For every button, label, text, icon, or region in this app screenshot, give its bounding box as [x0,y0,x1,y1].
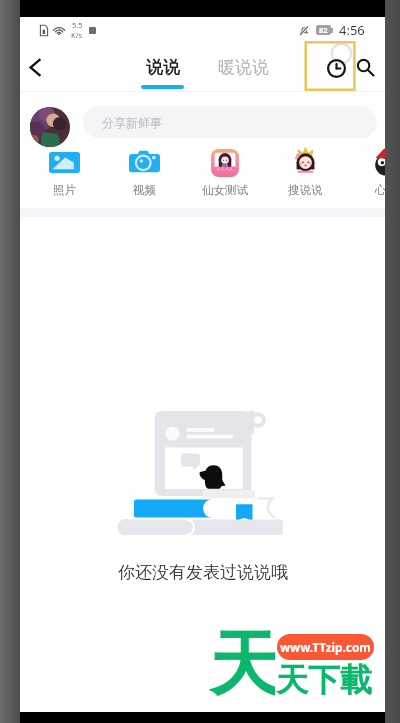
staticText: 照片 [53,183,76,197]
button[interactable]: 分享新鲜事 [83,106,377,138]
button[interactable]: Profile [30,107,70,147]
staticText: 搜说说 [288,183,323,197]
staticText: 仙女测试 [202,183,248,197]
staticText: 5.5 [72,20,83,30]
staticText: 天 [209,621,275,705]
staticText: 82 [319,25,328,35]
staticText: K/s [71,30,83,40]
button[interactable]: Recent visitors [318,50,354,86]
staticText: 心情 [375,183,398,197]
button[interactable]: 视频 [105,148,183,195]
staticText: www.TTzip.com [280,639,371,655]
button[interactable]: 暖说说 [216,43,270,91]
button[interactable]: 仙女测试 [186,148,264,195]
staticText: 暖说说 [218,57,269,78]
staticText: 4:56 [339,21,365,39]
button[interactable]: 照片 [25,148,103,195]
button[interactable]: 心情 [347,148,400,195]
staticText: 你还没有发表过说说哦 [118,562,288,583]
staticText: 视频 [133,183,156,197]
button[interactable]: 搜说说 [266,148,344,195]
staticText: 天下載 [276,660,372,700]
button[interactable]: Search [347,49,383,85]
button[interactable]: Back [14,43,56,91]
button[interactable]: 说说 [139,43,186,91]
staticText: 说说 [146,57,180,78]
staticText: 分享新鲜事 [102,115,162,130]
